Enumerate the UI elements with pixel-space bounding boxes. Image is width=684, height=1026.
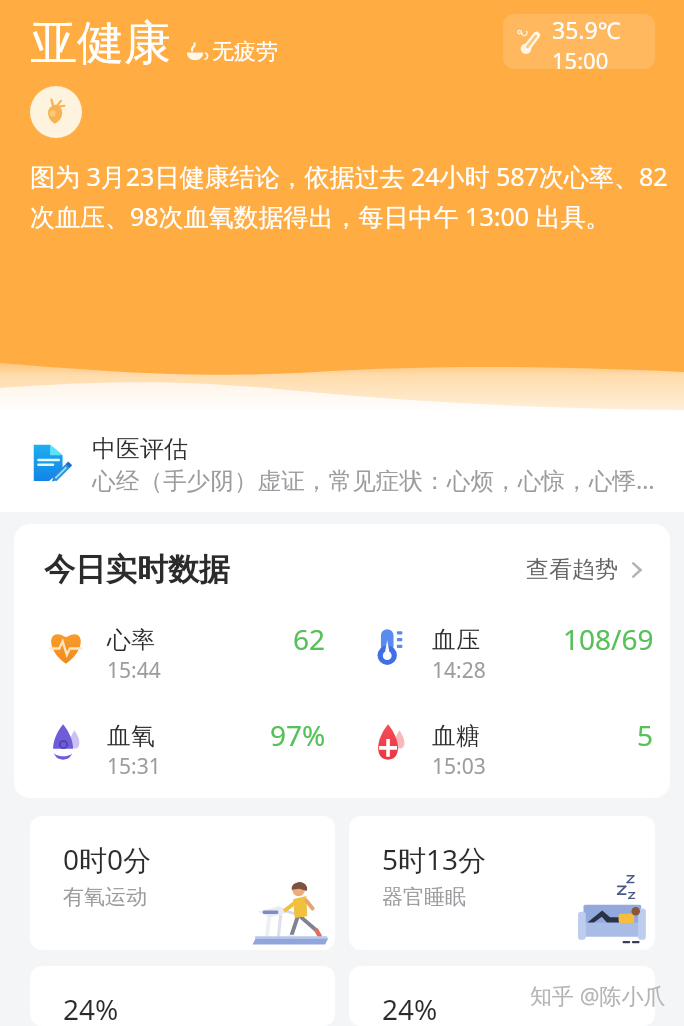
staticText: 24% bbox=[382, 990, 438, 1026]
staticText: 62 bbox=[293, 620, 326, 658]
staticText: 5时13分 bbox=[382, 840, 487, 878]
staticText: 15:31 bbox=[107, 752, 161, 781]
button[interactable]: 查看趋势 bbox=[526, 555, 648, 584]
staticText: 今日实时数据 bbox=[44, 550, 230, 589]
button[interactable]: 24% bbox=[30, 966, 335, 1026]
staticText: 次血压、98次血氧数据得出，每日中午 13:00 出具。 bbox=[30, 199, 611, 233]
staticText: 亚健康 bbox=[30, 14, 171, 73]
staticText: 知乎 @陈小爪 bbox=[530, 980, 666, 1010]
staticText: 图为 3月23日健康结论，依据过去 24小时 587次心率、82 bbox=[30, 159, 668, 193]
staticText: 血糖 bbox=[432, 721, 480, 751]
button[interactable]: 血糖 bbox=[370, 721, 654, 781]
button[interactable]: 0时0分 bbox=[30, 816, 335, 950]
staticText: 血压 bbox=[432, 625, 480, 655]
staticText: 15:00 bbox=[552, 45, 609, 69]
staticText: 0时0分 bbox=[63, 840, 152, 878]
button[interactable]: 5时13分 bbox=[349, 816, 655, 950]
staticText: 器官睡眠 bbox=[382, 884, 466, 910]
staticText: 查看趋势 bbox=[526, 555, 618, 584]
staticText: 97% bbox=[270, 716, 326, 754]
staticText: 血氧 bbox=[107, 721, 155, 751]
staticText: 有氧运动 bbox=[63, 884, 147, 910]
button[interactable]: 心率 bbox=[45, 625, 326, 685]
staticText: 15:03 bbox=[432, 752, 486, 781]
staticText: 中医评估 bbox=[92, 434, 188, 464]
staticText: 心率 bbox=[107, 625, 155, 655]
staticText: 35.9℃ bbox=[552, 14, 621, 45]
staticText: 108/69 bbox=[563, 620, 654, 658]
staticText: 无疲劳 bbox=[212, 38, 278, 66]
button[interactable]: Temperature bbox=[503, 14, 655, 69]
staticText: 24% bbox=[63, 990, 119, 1026]
button[interactable]: 24% bbox=[349, 966, 655, 1026]
staticText: 14:28 bbox=[432, 656, 486, 685]
staticText: 15:44 bbox=[107, 656, 161, 685]
staticText: 心经（手少阴）虚证，常见症状：心烦，心惊，心悸… bbox=[92, 464, 655, 496]
button[interactable]: 血氧 bbox=[45, 721, 326, 781]
button[interactable]: 血压 bbox=[370, 625, 654, 685]
button[interactable]: 中医评估 bbox=[0, 410, 684, 512]
staticText: 5 bbox=[637, 716, 654, 754]
